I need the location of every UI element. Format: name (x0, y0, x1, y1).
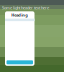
staticText: Some light header text here (2, 5, 49, 10)
staticText: Heading (11, 12, 28, 18)
